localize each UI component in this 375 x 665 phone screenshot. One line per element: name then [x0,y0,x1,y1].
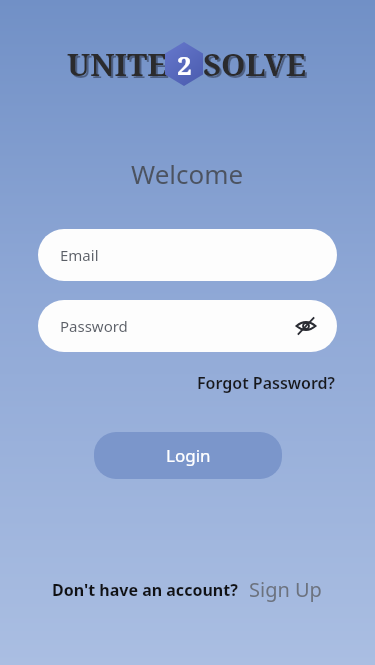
staticText: UNITE [69,45,170,87]
button[interactable]: Toggle password visibility [289,309,323,343]
staticText: Email [60,245,99,265]
staticText: UNITE [67,43,168,85]
button[interactable]: Email [38,229,337,281]
button[interactable]: Login [94,432,282,479]
staticText: Don't have an account? [52,579,238,601]
staticText: Forgot Password? [197,372,335,394]
staticText: Welcome [131,156,244,191]
staticText: 2 [177,47,192,82]
button[interactable]: Forgot Password? [195,370,337,396]
staticText: Login [166,444,211,467]
staticText: SOLVE [203,43,306,85]
button[interactable]: Sign Up [247,576,324,603]
staticText: Password [60,316,128,336]
staticText: Sign Up [249,576,322,603]
button[interactable]: Password [38,300,337,352]
staticText: SOLVE [205,45,308,87]
